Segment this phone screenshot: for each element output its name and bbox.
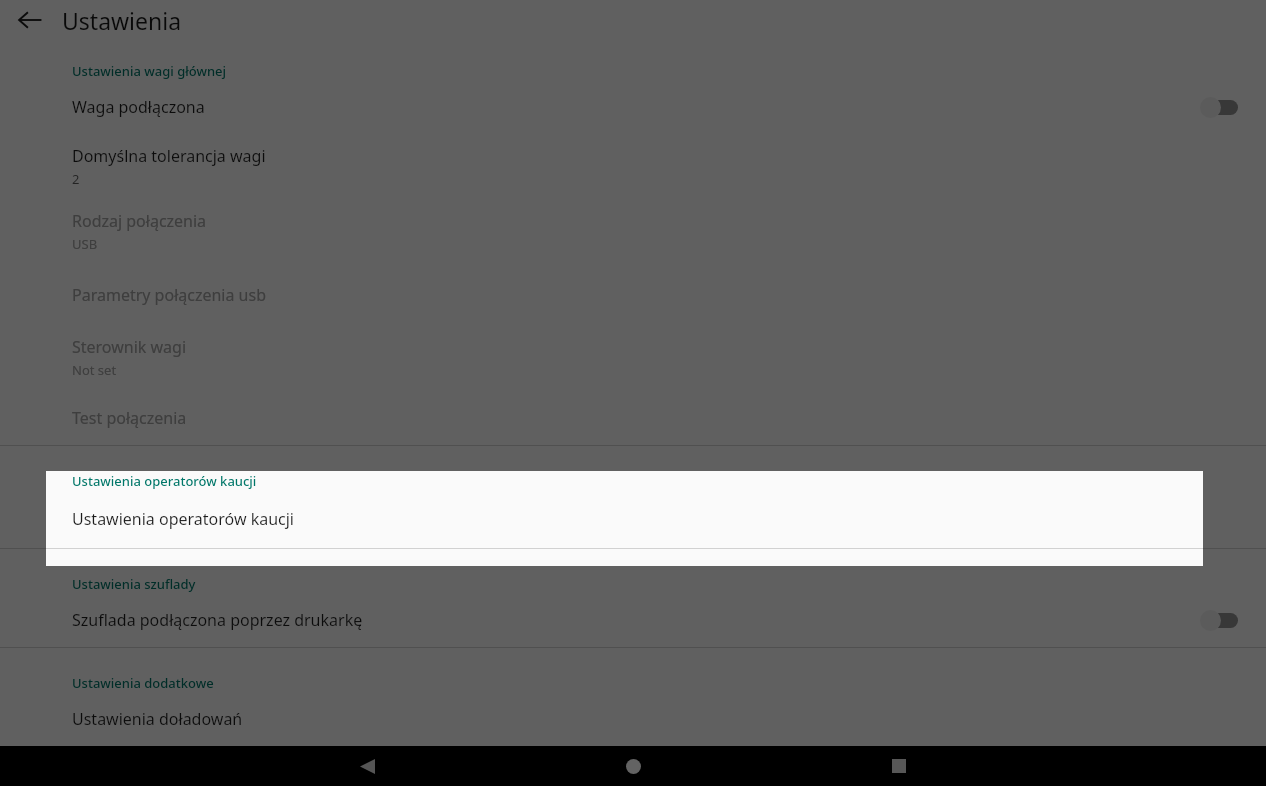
staticText: USB xyxy=(72,235,98,253)
button[interactable]: Home xyxy=(606,746,660,786)
staticText: Rodzaj połączenia xyxy=(72,210,207,232)
button[interactable]: Toggle switch xyxy=(1200,606,1240,634)
button[interactable]: Ustawienia doładowań xyxy=(0,692,1266,746)
button[interactable]: Back xyxy=(340,746,394,786)
staticText: Ustawienia doładowań xyxy=(72,708,243,730)
button[interactable]: Waga podłączona xyxy=(0,80,1266,134)
staticText: Ustawienia wagi głównej xyxy=(72,62,227,80)
staticText: Test połączenia xyxy=(72,407,187,429)
button[interactable]: Ustawienia operatorów kaucji xyxy=(0,490,1266,548)
staticText: Ustawienia operatorów kaucji xyxy=(72,472,257,490)
staticText: 2 xyxy=(72,170,80,188)
button[interactable]: Toggle switch xyxy=(1200,93,1240,121)
staticText: Ustawienia dodatkowe xyxy=(72,674,214,692)
staticText: Sterownik wagi xyxy=(72,336,187,358)
staticText: Ustawienia xyxy=(62,5,182,36)
staticText: Domyślna tolerancja wagi xyxy=(72,145,266,167)
staticText: Ustawienia operatorów kaucji xyxy=(72,508,294,530)
staticText: Parametry połączenia usb xyxy=(72,284,267,306)
staticText: Not set xyxy=(72,361,117,379)
staticText: Ustawienia szuflady xyxy=(72,575,196,593)
button[interactable]: Domyślna tolerancja wagi xyxy=(0,134,1266,198)
button[interactable]: Navigate up xyxy=(8,0,52,42)
staticText: Szuflada podłączona poprzez drukarkę xyxy=(72,609,363,631)
button[interactable]: Szuflada podłączona poprzez drukarkę xyxy=(0,593,1266,647)
button[interactable]: Recent apps xyxy=(872,746,926,786)
staticText: Waga podłączona xyxy=(72,96,205,118)
